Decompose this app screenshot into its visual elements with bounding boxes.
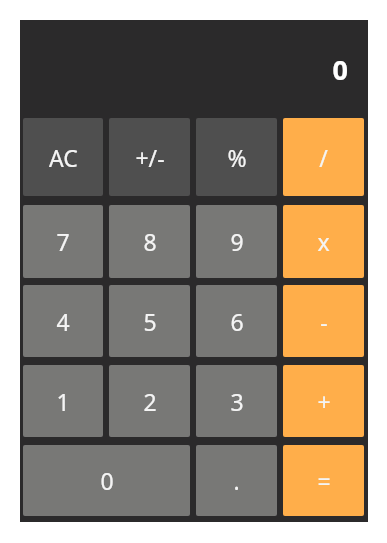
button[interactable]: 4 (23, 285, 103, 357)
staticText: 2 (143, 386, 157, 417)
button[interactable]: AC (23, 118, 103, 196)
button[interactable]: 1 (23, 365, 103, 437)
staticText: 9 (230, 226, 244, 257)
staticText: 6 (230, 306, 244, 337)
button[interactable]: x (283, 205, 364, 278)
button[interactable]: 5 (109, 285, 190, 357)
button[interactable]: 7 (23, 205, 103, 278)
staticText: 7 (56, 226, 70, 257)
staticText: - (320, 306, 328, 337)
staticText: . (233, 465, 240, 496)
button[interactable]: 0 (23, 445, 190, 516)
staticText: x (317, 226, 330, 257)
button[interactable]: / (283, 118, 364, 196)
staticText: + (317, 386, 331, 417)
button[interactable]: % (196, 118, 277, 196)
staticText: 3 (230, 386, 244, 417)
button[interactable]: + (283, 365, 364, 437)
staticText: 4 (56, 306, 70, 337)
staticText: % (227, 142, 247, 173)
staticText: +/- (135, 142, 165, 173)
staticText: / (319, 142, 328, 173)
staticText: 8 (143, 226, 157, 257)
button[interactable]: - (283, 285, 364, 357)
button[interactable]: 3 (196, 365, 277, 437)
button[interactable]: = (283, 445, 364, 516)
button[interactable]: 6 (196, 285, 277, 357)
staticText: 1 (56, 386, 70, 417)
button[interactable]: . (196, 445, 277, 516)
button[interactable]: 8 (109, 205, 190, 278)
button[interactable]: 9 (196, 205, 277, 278)
staticText: 5 (143, 306, 157, 337)
staticText: 0 (100, 465, 114, 496)
staticText: AC (49, 142, 78, 173)
staticText: = (317, 465, 331, 496)
button[interactable]: +/- (109, 118, 190, 196)
button[interactable]: 2 (109, 365, 190, 437)
staticText: 0 (332, 51, 348, 88)
